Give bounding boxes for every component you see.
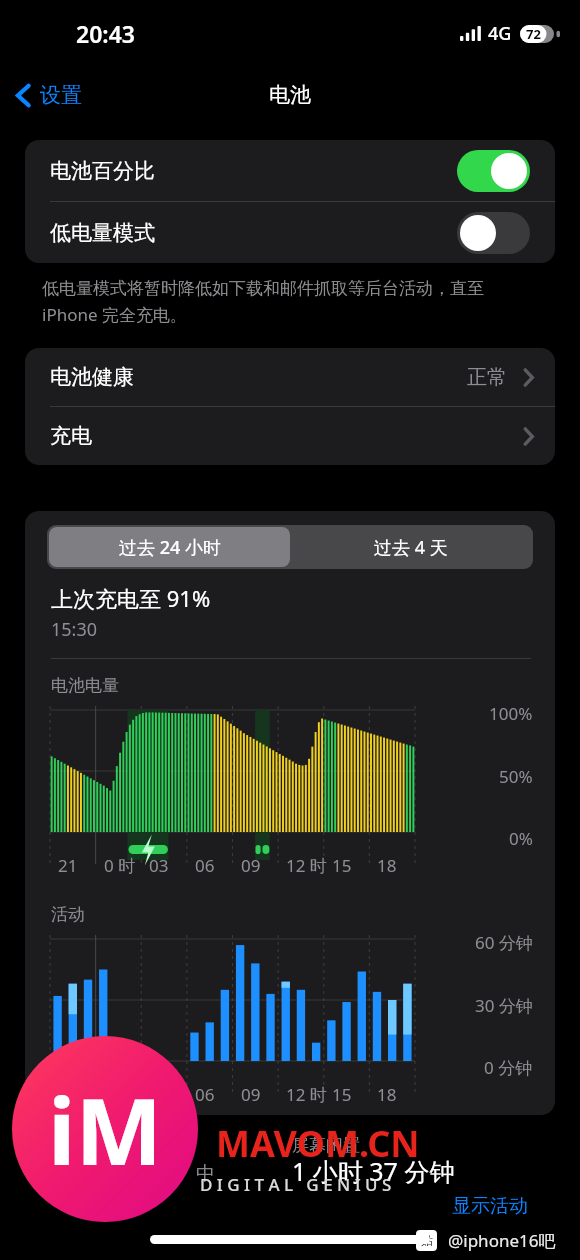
staticText: 1 小时 37 分钟 (292, 1154, 455, 1188)
staticText: 18 (377, 854, 397, 877)
staticText: 100% (489, 702, 533, 725)
staticText: 09 (241, 1083, 261, 1106)
staticText: 15 (332, 854, 352, 877)
staticText: 20:43 (76, 18, 135, 49)
button[interactable]: 充电 (25, 407, 555, 465)
staticText: 过去 24 小时 (119, 535, 221, 560)
staticText: 过去 4 天 (374, 535, 448, 560)
button[interactable]: 低电量模式 (457, 212, 530, 254)
button[interactable]: 过去 4 天 (290, 527, 531, 567)
staticText: 18 (377, 1083, 397, 1106)
staticText: 06 (195, 854, 215, 877)
staticText: 中 (196, 1162, 215, 1186)
staticText: 30 分钟 (475, 994, 533, 1017)
staticText: 12 时 (286, 854, 327, 877)
staticText: 09 (241, 854, 261, 877)
staticText: 03 (149, 1083, 169, 1106)
staticText: 50% (499, 765, 533, 788)
button[interactable]: 电池百分比 (25, 140, 555, 201)
staticText: 06 (195, 1083, 215, 1106)
staticText: 贴 (421, 1233, 433, 1248)
button[interactable]: 电池百分比 (457, 150, 530, 192)
staticText: 0 时 (104, 854, 136, 877)
button[interactable]: 过去 24 小时 (49, 527, 290, 567)
staticText: 电池百分比 (50, 158, 457, 184)
staticText: 设置 (40, 82, 82, 108)
button[interactable]: 低电量模式 (25, 202, 555, 263)
staticText: 0 时 (104, 1083, 136, 1106)
staticText: 活动 (51, 904, 85, 925)
staticText: 15 (332, 1083, 352, 1106)
staticText: 上次充电至 91% (51, 583, 211, 613)
staticText: 0 分钟 (484, 1056, 533, 1079)
staticText: 电池电量 (51, 675, 119, 696)
staticText: 4G (488, 21, 512, 46)
staticText: 低电量模式 (50, 220, 457, 246)
staticText: 电池 (269, 82, 311, 108)
staticText: 充电 (50, 423, 523, 449)
staticText: 15:30 (51, 617, 98, 642)
staticText: iM (48, 1067, 163, 1192)
button[interactable]: 显示活动 (452, 1194, 528, 1218)
staticText: 0% (509, 827, 533, 850)
staticText: 电池健康 (50, 364, 467, 390)
staticText: 低电量模式将暂时降低如下载和邮件抓取等后台活动，直至 iPhone 完全充电。 (42, 278, 484, 326)
staticText: MAVOM.CN (216, 1119, 420, 1168)
button[interactable]: 电池健康 (25, 348, 555, 406)
staticText: 21 (58, 1083, 78, 1106)
staticText: @iphone16吧 (448, 1229, 556, 1252)
staticText: 21 (58, 854, 78, 877)
staticText: 屏幕闲置 (292, 1135, 360, 1156)
staticText: 正常 (467, 365, 507, 390)
button[interactable]: 设置 (0, 76, 94, 114)
staticText: 03 (149, 854, 169, 877)
staticText: 12 时 (286, 1083, 327, 1106)
staticText: 60 分钟 (475, 931, 533, 954)
staticText: 72 (526, 25, 541, 43)
staticText: D I G I T A L G E N I U S (200, 1173, 392, 1196)
